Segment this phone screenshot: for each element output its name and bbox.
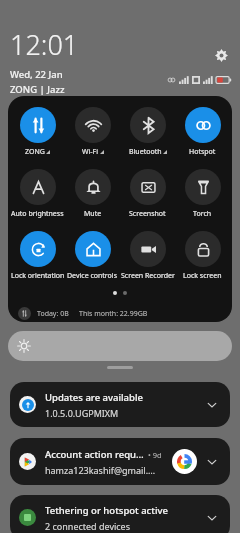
staticText: • 9d bbox=[148, 450, 162, 460]
button[interactable]: Auto brightness bbox=[10, 168, 65, 220]
staticText: 2 connected devices bbox=[45, 520, 131, 532]
staticText: ZONG bbox=[25, 147, 45, 157]
staticText: Mute bbox=[84, 209, 102, 219]
staticText: Torch bbox=[193, 209, 212, 219]
staticText: Screen Recorder bbox=[121, 271, 175, 281]
staticText: Today: 0B bbox=[37, 309, 69, 319]
staticText: Wi-Fi bbox=[82, 147, 99, 157]
button[interactable]: Expand bbox=[203, 509, 221, 527]
staticText: Auto brightness bbox=[11, 209, 64, 219]
staticText: Lock screen bbox=[183, 271, 222, 281]
staticText: Account action requ… bbox=[45, 448, 144, 461]
staticText: 1.0.5.0.UGPMIXM bbox=[45, 407, 119, 419]
staticText: Device controls bbox=[67, 271, 118, 281]
staticText: Tethering or hotspot active bbox=[45, 504, 168, 517]
staticText: Screenshot bbox=[129, 209, 166, 219]
button[interactable]: Torch bbox=[175, 168, 230, 220]
button[interactable]: Expand bbox=[203, 453, 221, 471]
staticText: 12:01 bbox=[10, 26, 79, 63]
staticText: Wed, 22 Jan bbox=[10, 68, 63, 81]
button[interactable]: Expand bbox=[203, 396, 221, 414]
staticText: Updates are available bbox=[45, 391, 143, 404]
staticText: Bluetooth bbox=[129, 147, 162, 157]
button[interactable]: Settings bbox=[210, 44, 232, 66]
button[interactable]: Wi-Fi bbox=[65, 106, 120, 158]
button[interactable]: Bluetooth bbox=[120, 106, 175, 158]
button[interactable]: ZONG bbox=[10, 106, 65, 158]
button[interactable]: Mute bbox=[65, 168, 120, 220]
staticText: This month: 22.99GB bbox=[79, 309, 148, 319]
staticText: ZONG | Jazz bbox=[10, 83, 65, 96]
button[interactable]: Tethering or hotspot active bbox=[10, 495, 230, 533]
staticText: Lock orientation bbox=[11, 271, 65, 281]
button[interactable]: Screen Recorder bbox=[120, 230, 175, 282]
staticText: hamza123kashif@gmail.… bbox=[45, 464, 156, 476]
button[interactable]: Account action requ… bbox=[10, 438, 230, 485]
button[interactable]: Hotspot bbox=[175, 106, 230, 158]
staticText: Hotspot bbox=[189, 147, 216, 157]
button[interactable]: Screenshot bbox=[120, 168, 175, 220]
button[interactable]: Lock orientation bbox=[10, 230, 65, 282]
button[interactable]: Lock screen bbox=[175, 230, 230, 282]
button[interactable]: Updates are available bbox=[10, 382, 230, 427]
button[interactable]: Brightness bbox=[8, 331, 232, 361]
button[interactable]: Device controls bbox=[65, 230, 120, 282]
